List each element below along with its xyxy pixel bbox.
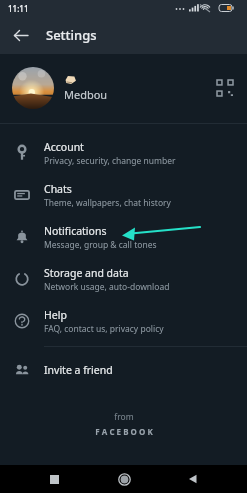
staticText: Help [44,308,67,322]
button[interactable]: Back [6,21,34,49]
staticText: Invite a friend [44,363,113,377]
button[interactable]: Help [0,300,247,342]
button[interactable]: Home [109,465,139,493]
button[interactable]: Back [178,465,208,493]
button[interactable]: Notifications [0,216,247,258]
button[interactable]: QR code [212,75,238,101]
staticText: 11:11 [8,3,29,14]
button[interactable]: Recent apps [39,465,69,493]
staticText: FAQ, contact us, privacy policy [44,323,164,335]
staticText: Message, group & call tones [44,239,157,251]
staticText: F A C E B O O K [95,426,153,437]
staticText: Notifications [44,224,107,238]
staticText: Chats [44,182,72,196]
staticText: Account [44,140,84,154]
button[interactable]: Chats [0,174,247,216]
staticText: Storage and data [44,266,129,280]
staticText: Privacy, security, change number [44,155,176,167]
staticText: Theme, wallpapers, chat history [44,197,171,209]
button[interactable]: Account [0,132,247,174]
staticText: Settings [46,26,97,44]
staticText: from [114,411,134,423]
button[interactable]: Medbou [0,60,247,116]
button[interactable]: Storage and data [0,258,247,300]
staticText: Medbou [64,87,108,102]
button[interactable]: Invite a friend [0,351,247,389]
staticText: Network usage, auto-download [44,281,170,293]
